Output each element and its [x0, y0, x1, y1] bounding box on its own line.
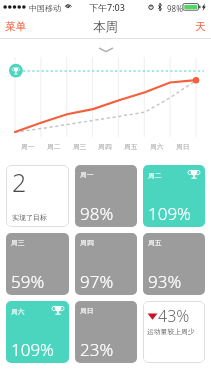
staticText: 周四 — [98, 142, 112, 151]
staticText: 本周 — [93, 19, 118, 35]
staticText: 93% — [148, 270, 182, 293]
staticText: 天 — [195, 20, 206, 33]
staticText: 菜单 — [5, 20, 26, 33]
staticText: 周日 — [80, 306, 94, 315]
staticText: 59% — [11, 270, 45, 293]
staticText: 下午7:03 — [89, 1, 125, 13]
button[interactable]: 周四 — [75, 233, 137, 295]
staticText: 98% — [80, 202, 114, 225]
button[interactable]: 周二 — [143, 165, 205, 227]
staticText: 周五 — [148, 238, 162, 247]
staticText: 97% — [80, 270, 114, 293]
button[interactable]: 2 — [6, 165, 69, 227]
button[interactable]: 周五 — [143, 233, 205, 295]
staticText: 周三 — [73, 142, 87, 151]
staticText: 运动量较上周少 — [147, 327, 195, 336]
staticText: 109% — [148, 202, 191, 225]
button[interactable]: 天 — [187, 16, 211, 37]
staticText: 周三 — [11, 238, 25, 247]
button[interactable]: 43% — [143, 301, 205, 363]
button[interactable]: 菜单 — [0, 16, 34, 37]
staticText: 周一 — [80, 170, 94, 179]
staticText: 周五 — [124, 142, 138, 151]
button[interactable]: 周一 — [75, 165, 137, 227]
staticText: 2 — [12, 165, 27, 199]
button[interactable]: 周六 — [6, 301, 69, 363]
staticText: 109% — [11, 338, 54, 361]
staticText: 23% — [80, 338, 114, 361]
staticText: 周日 — [176, 142, 190, 151]
staticText: 43% — [158, 305, 190, 327]
other: Goal achieved — [188, 170, 200, 180]
staticText: 周二 — [148, 171, 162, 180]
staticText: 周六 — [11, 307, 25, 316]
staticText: 周六 — [150, 142, 164, 151]
staticText: 98% — [167, 3, 183, 14]
button[interactable]: 周日 — [75, 301, 137, 363]
button[interactable]: 周三 — [6, 233, 69, 295]
staticText: 中国移动 — [29, 3, 61, 13]
staticText: 周二 — [47, 142, 61, 151]
other: Goal achieved — [52, 306, 64, 316]
staticText: 周一 — [21, 142, 35, 151]
staticText: 实现了目标 — [12, 213, 47, 222]
staticText: 周四 — [80, 238, 94, 247]
